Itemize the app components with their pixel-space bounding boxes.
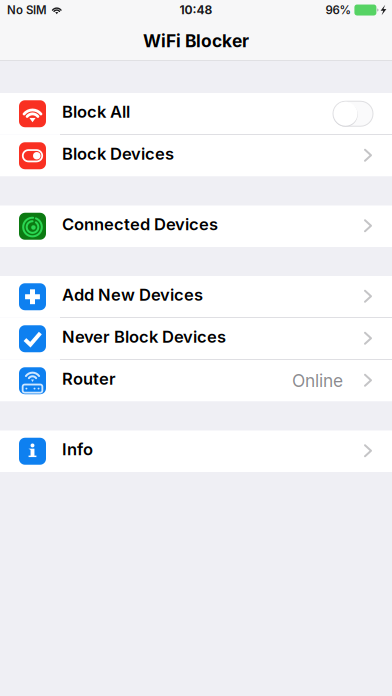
staticText: Block Devices bbox=[62, 144, 174, 164]
staticText: 96% bbox=[325, 3, 351, 17]
staticText: Info bbox=[62, 439, 93, 459]
button[interactable]: Block Devices bbox=[0, 135, 392, 176]
button[interactable]: Router bbox=[0, 360, 392, 401]
staticText: Add New Devices bbox=[62, 285, 203, 305]
staticText: WiFi Blocker bbox=[143, 30, 249, 51]
button[interactable]: Never Block Devices bbox=[0, 318, 392, 359]
staticText: No SIM bbox=[7, 3, 47, 17]
staticText: Block All bbox=[62, 102, 130, 122]
button[interactable]: Info bbox=[0, 430, 392, 472]
staticText: Connected Devices bbox=[62, 214, 218, 234]
button[interactable]: Add New Devices bbox=[0, 276, 392, 317]
staticText: Router bbox=[62, 369, 116, 389]
staticText: Online bbox=[292, 370, 343, 391]
button[interactable]: Block All bbox=[0, 93, 392, 134]
button[interactable]: Connected Devices bbox=[0, 205, 392, 247]
staticText: 10:48 bbox=[179, 3, 212, 17]
staticText: Never Block Devices bbox=[62, 327, 226, 347]
